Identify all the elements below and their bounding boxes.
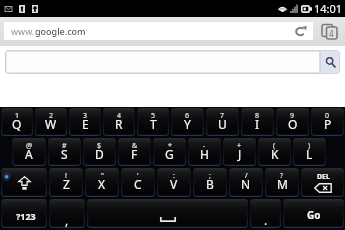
staticText: 4 <box>117 111 122 121</box>
staticText: I <box>255 116 260 132</box>
button[interactable]: ? <box>265 168 299 197</box>
staticText: G <box>165 146 174 162</box>
button[interactable]: . <box>250 199 281 228</box>
staticText: U <box>218 116 227 132</box>
button[interactable]: @ <box>12 138 46 166</box>
button[interactable]: : <box>157 168 191 197</box>
button[interactable]: ?123 <box>1 199 47 228</box>
staticText: F <box>131 146 138 162</box>
staticText: ' <box>137 171 139 181</box>
staticText: : <box>173 171 175 181</box>
button[interactable]: 7 <box>206 108 239 136</box>
staticText: X <box>98 176 106 192</box>
staticText: DEL <box>317 172 330 182</box>
button[interactable]: Reload <box>287 22 313 40</box>
staticText: ; <box>209 171 211 181</box>
staticText: 4 <box>329 28 334 39</box>
staticText: 6 <box>185 111 190 121</box>
button[interactable]: Delete <box>301 168 344 197</box>
staticText: , <box>65 212 69 228</box>
button[interactable]: Go <box>283 199 344 228</box>
button[interactable]: + <box>223 138 256 166</box>
staticText: 0 <box>325 111 330 121</box>
button[interactable]: * <box>153 138 186 166</box>
staticText: & <box>132 141 138 151</box>
staticText: L <box>306 146 313 162</box>
staticText: 3 <box>83 111 88 121</box>
staticText: M <box>277 176 288 192</box>
button[interactable]: 9 <box>276 108 309 136</box>
button[interactable]: 2 <box>35 108 67 136</box>
staticText: R <box>115 116 123 132</box>
staticText: O <box>288 116 298 132</box>
button[interactable]: ; <box>193 168 227 197</box>
button[interactable]: ' <box>121 168 155 197</box>
button[interactable]: " <box>85 168 119 197</box>
staticText: . <box>264 212 268 228</box>
staticText: K <box>271 146 279 162</box>
button[interactable]: www. <box>4 22 313 40</box>
button[interactable]: 5 <box>137 108 169 136</box>
staticText: ? <box>280 171 284 181</box>
staticText: T <box>150 116 157 132</box>
button[interactable] <box>5 50 320 74</box>
staticText: V <box>170 176 178 192</box>
button[interactable]: & <box>118 138 151 166</box>
button[interactable]: 8 <box>241 108 274 136</box>
staticText: " <box>101 171 104 181</box>
staticText: ?123 <box>16 210 36 222</box>
staticText: + <box>237 141 242 151</box>
staticText: P <box>324 116 332 132</box>
staticText: Q <box>12 116 22 132</box>
button[interactable]: Tabs <box>313 17 345 46</box>
staticText: * <box>168 141 172 151</box>
staticText: W <box>45 116 57 132</box>
button[interactable]: $ <box>83 138 116 166</box>
button[interactable]: Shift <box>1 168 47 197</box>
staticText: 14:01 <box>314 1 343 16</box>
staticText: $ <box>97 141 102 151</box>
staticText: 7 <box>220 111 225 121</box>
staticText: N <box>241 176 251 192</box>
staticText: 1 <box>15 111 20 121</box>
staticText: www. <box>11 25 35 37</box>
staticText: ( <box>273 141 276 151</box>
staticText: # <box>62 141 67 151</box>
staticText: H <box>200 146 209 162</box>
button[interactable]: ! <box>49 168 83 197</box>
button[interactable]: Space <box>87 199 248 228</box>
staticText: 5 <box>151 111 156 121</box>
staticText: Go <box>307 208 321 222</box>
staticText: J <box>238 146 242 162</box>
staticText: ! <box>65 171 67 181</box>
button[interactable]: ( <box>258 138 291 166</box>
button[interactable]: # <box>48 138 81 166</box>
staticText: A <box>25 146 33 162</box>
staticText: E <box>82 116 89 132</box>
staticText: 8 <box>255 111 260 121</box>
staticText: Y <box>184 116 191 132</box>
staticText: google.com <box>35 25 86 37</box>
staticText: C <box>134 176 142 192</box>
staticText: 2 <box>49 111 54 121</box>
staticText: D <box>95 146 104 162</box>
button[interactable]: 6 <box>171 108 204 136</box>
button[interactable]: 3 <box>69 108 101 136</box>
staticText: Z <box>63 176 70 192</box>
staticText: 9 <box>290 111 295 121</box>
staticText: @ <box>26 141 33 151</box>
button[interactable]: Search <box>320 50 340 74</box>
button[interactable]: 0 <box>311 108 344 136</box>
button[interactable]: ) <box>293 138 326 166</box>
button[interactable]: / <box>229 168 263 197</box>
button[interactable]: , <box>49 199 85 228</box>
staticText: S <box>61 146 68 162</box>
staticText: ) <box>308 141 311 151</box>
button[interactable]: - <box>188 138 221 166</box>
button[interactable]: 1 <box>1 108 33 136</box>
staticText: / <box>245 171 248 181</box>
button[interactable]: 4 <box>103 108 135 136</box>
staticText: - <box>203 141 206 151</box>
staticText: B <box>206 176 214 192</box>
